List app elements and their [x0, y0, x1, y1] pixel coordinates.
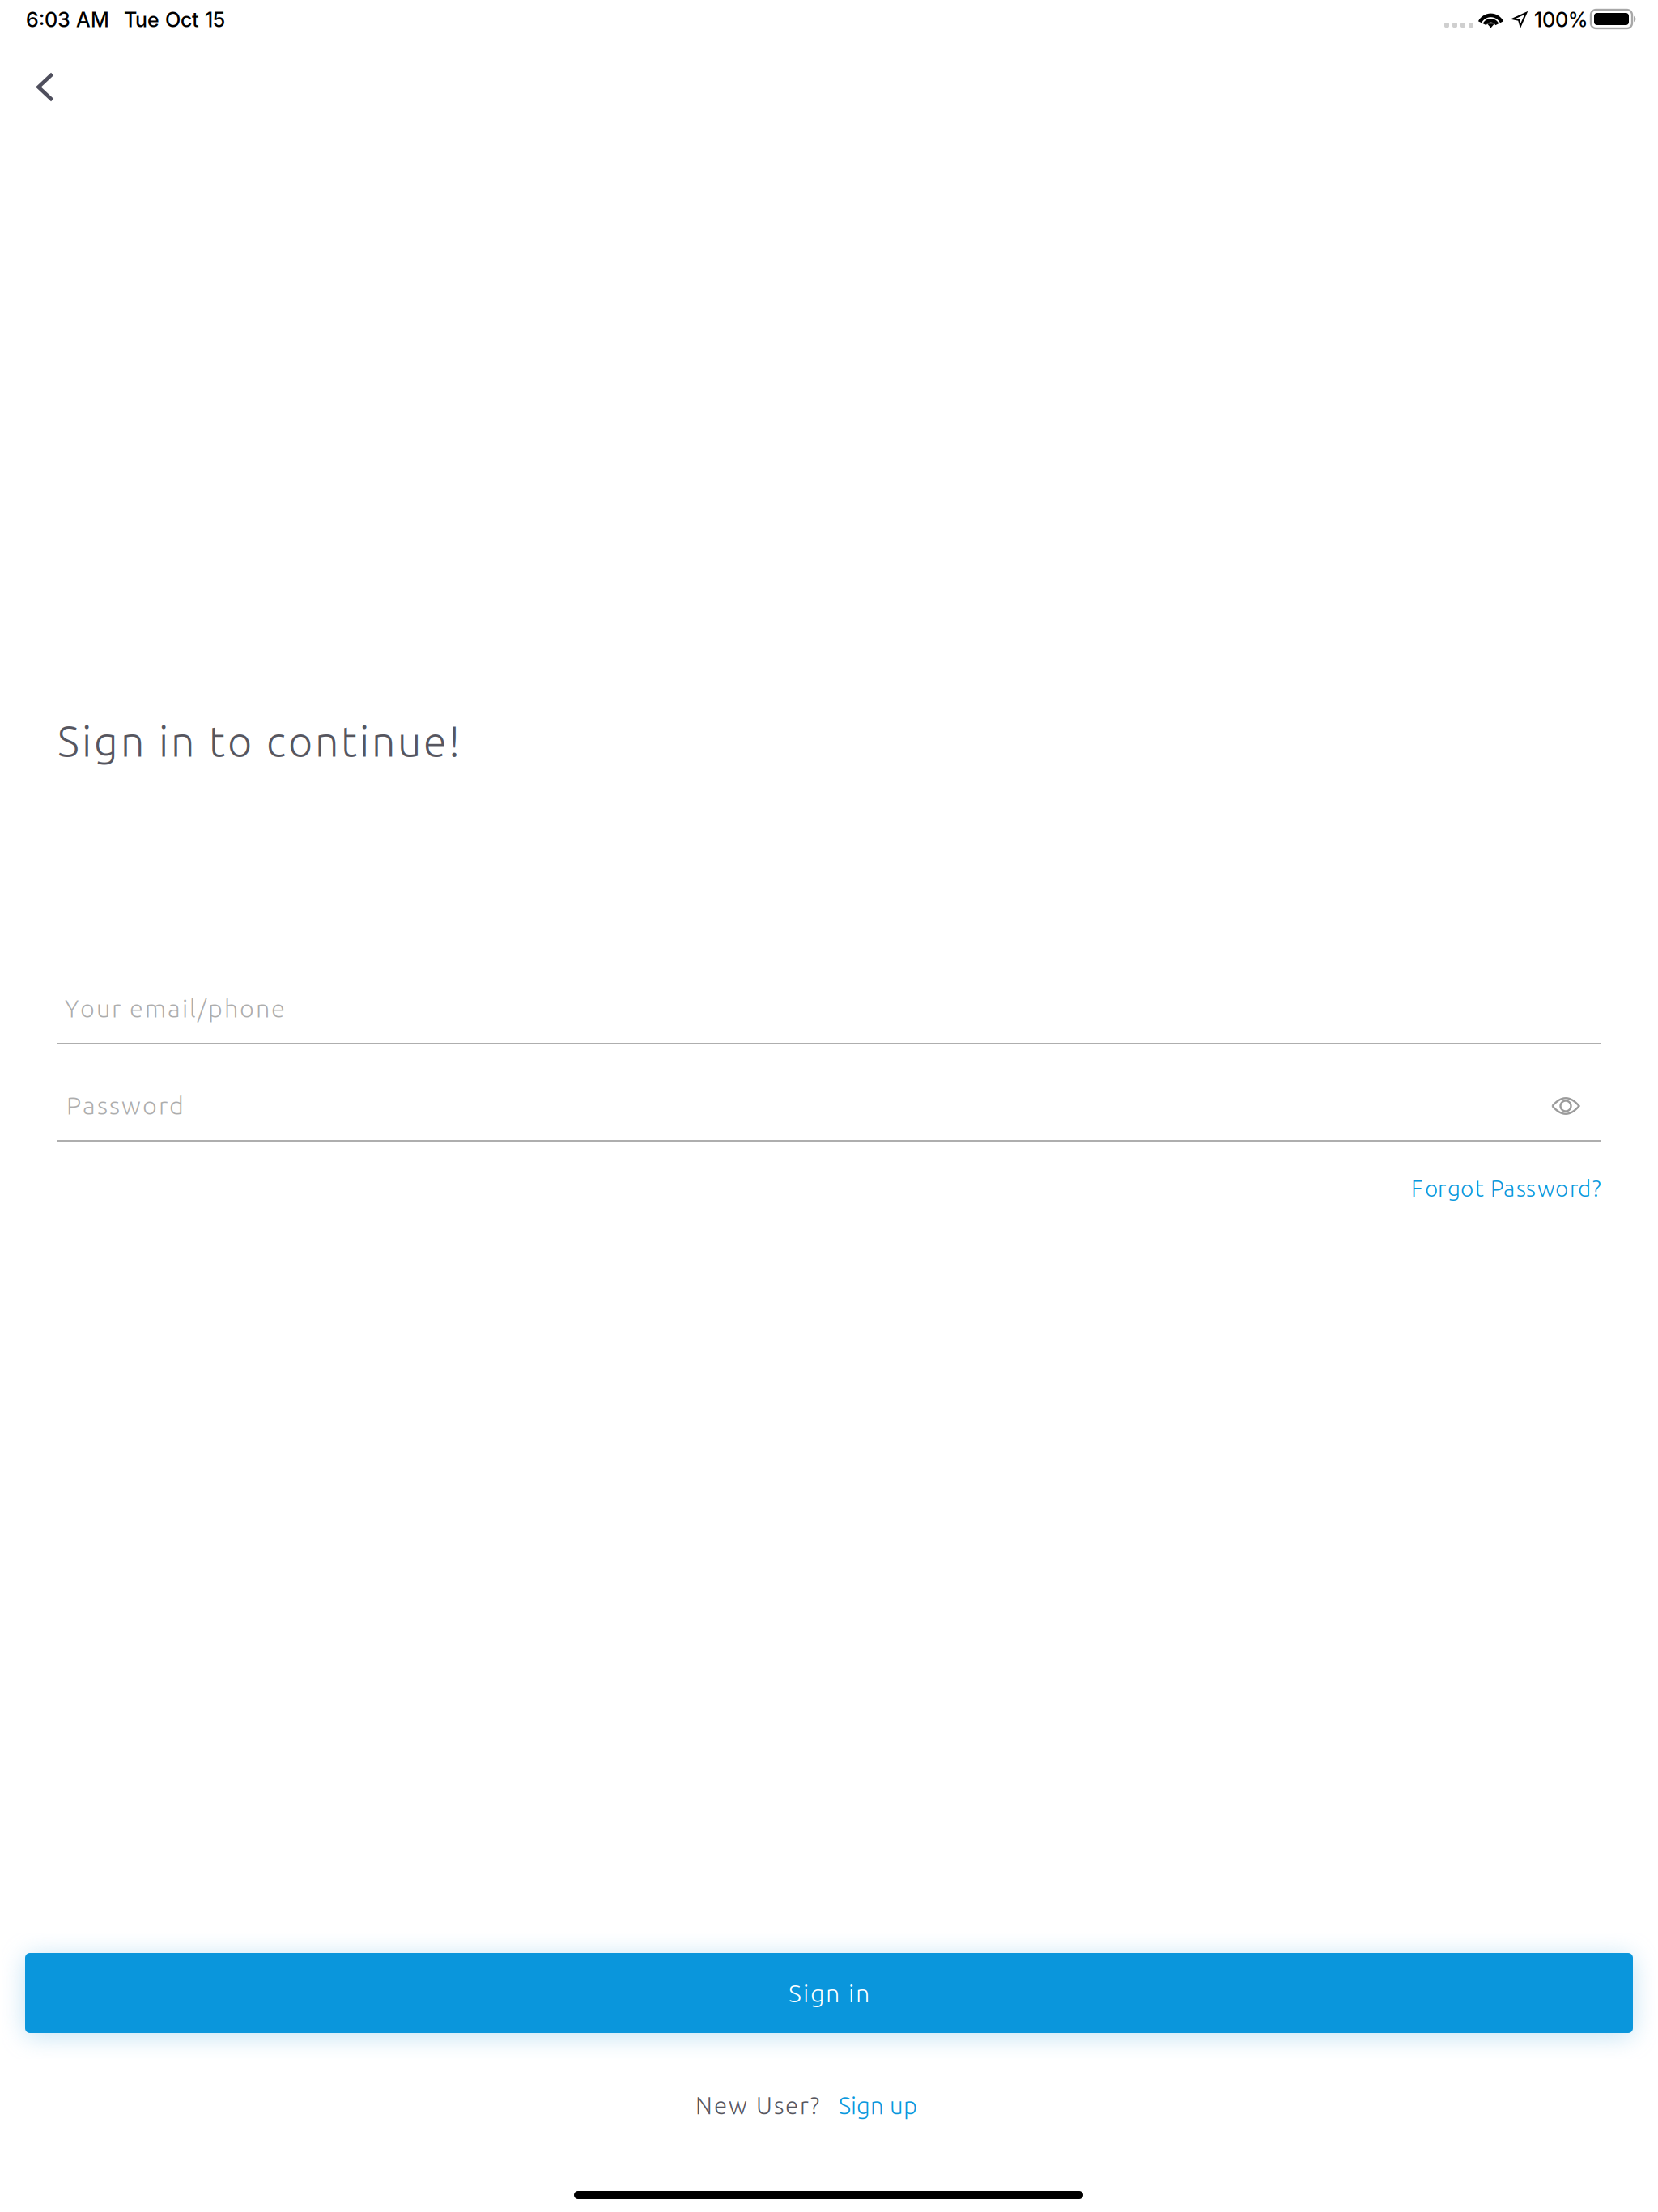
button[interactable]: Back	[19, 55, 72, 119]
staticText: N e w U s e r ?	[695, 2092, 819, 2119]
button[interactable]: Sign in	[25, 1953, 1633, 2033]
staticText: Tue Oct 15	[124, 7, 225, 32]
staticText: 100%	[1534, 7, 1588, 32]
staticText: Sign up	[839, 2092, 917, 2119]
button[interactable]: Show password	[1537, 1082, 1595, 1130]
staticText: 6:03 AM	[26, 7, 109, 32]
staticText: S i g n i n	[789, 1979, 869, 2007]
button[interactable]: Sign up	[824, 2078, 932, 2133]
button[interactable]: Forgot Password?	[1397, 1161, 1616, 1216]
staticText: F or go t Pa ss wo rd ?	[1411, 1176, 1601, 1201]
staticText: Y o u r e m a i l / p h o n e	[65, 994, 285, 1022]
staticText: P a s s w o r d	[66, 1091, 184, 1119]
staticText: S i g n i n t o c o n t i n u e !	[57, 717, 460, 765]
